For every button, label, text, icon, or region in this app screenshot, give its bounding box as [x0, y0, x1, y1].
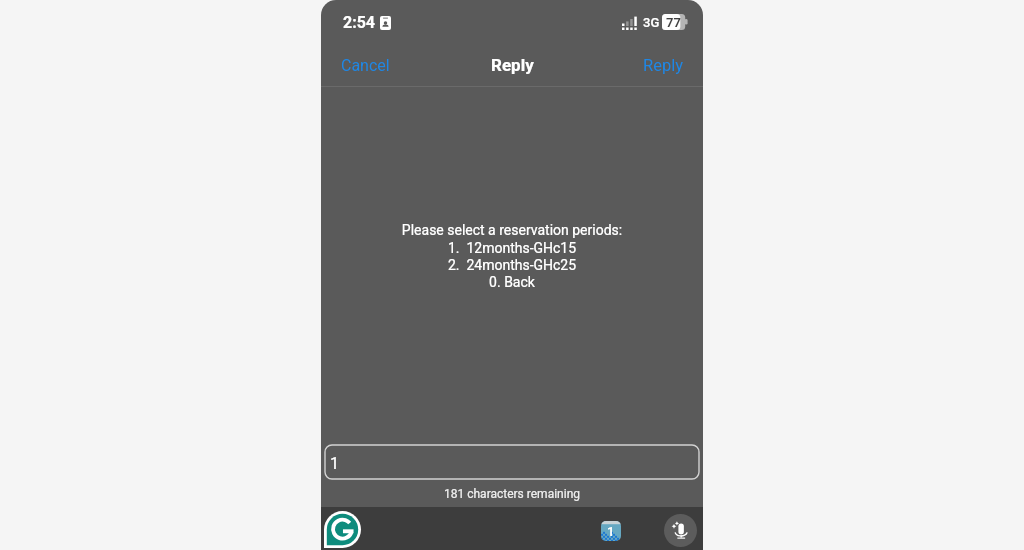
button[interactable]: Cancel [321, 44, 410, 86]
button[interactable]: Reply [624, 44, 703, 86]
staticText: 1 [607, 524, 615, 539]
button[interactable]: Grammarly [324, 511, 361, 548]
staticText: 3G [643, 15, 660, 30]
staticText: 77 [666, 15, 681, 30]
staticText: Please select a reservation periods: 1. … [321, 222, 703, 290]
staticText: Reply [643, 56, 684, 75]
staticText: 181 characters remaining [444, 487, 580, 501]
staticText: 2:54 [343, 13, 376, 32]
button[interactable]: 1 [325, 445, 699, 479]
staticText: Cancel [341, 56, 390, 75]
staticText: 1 [330, 454, 339, 473]
staticText: Reply [491, 55, 534, 75]
button[interactable]: Voice input [664, 514, 697, 547]
button[interactable]: 1 suggestion [601, 521, 621, 541]
